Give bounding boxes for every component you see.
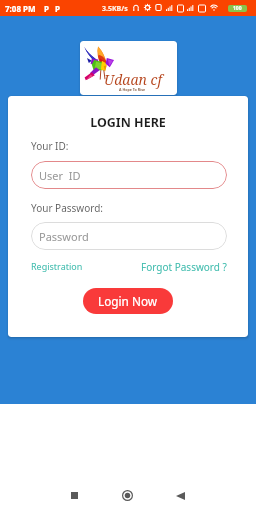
staticText: P — [44, 3, 49, 14]
staticText: Your Password: — [31, 201, 104, 215]
staticText: Password — [39, 229, 89, 244]
staticText: P — [55, 3, 60, 14]
button[interactable]: Registration — [31, 260, 83, 272]
staticText: Your ID: — [31, 139, 69, 153]
staticText: 100 — [233, 5, 242, 12]
staticText: Registration — [31, 260, 83, 272]
button[interactable]: Recents — [58, 479, 91, 512]
staticText: 7:08 PM — [5, 3, 36, 14]
button[interactable]: Forgot Password ? — [141, 260, 227, 274]
button[interactable]: Back — [164, 479, 197, 512]
staticText: LOGIN HERE — [8, 114, 248, 131]
staticText: Udaan cf — [104, 70, 162, 89]
staticText: 3.5KB/s — [102, 4, 128, 14]
staticText: Forgot Password ? — [141, 260, 227, 274]
button[interactable]: Login Now — [83, 288, 173, 314]
staticText: User ID — [39, 168, 81, 183]
button[interactable]: User ID — [31, 161, 227, 189]
staticText: Login Now — [98, 293, 158, 309]
button[interactable]: Password — [31, 222, 227, 250]
button[interactable]: Home — [111, 479, 144, 512]
staticText: A Hope To Rise — [119, 87, 146, 92]
